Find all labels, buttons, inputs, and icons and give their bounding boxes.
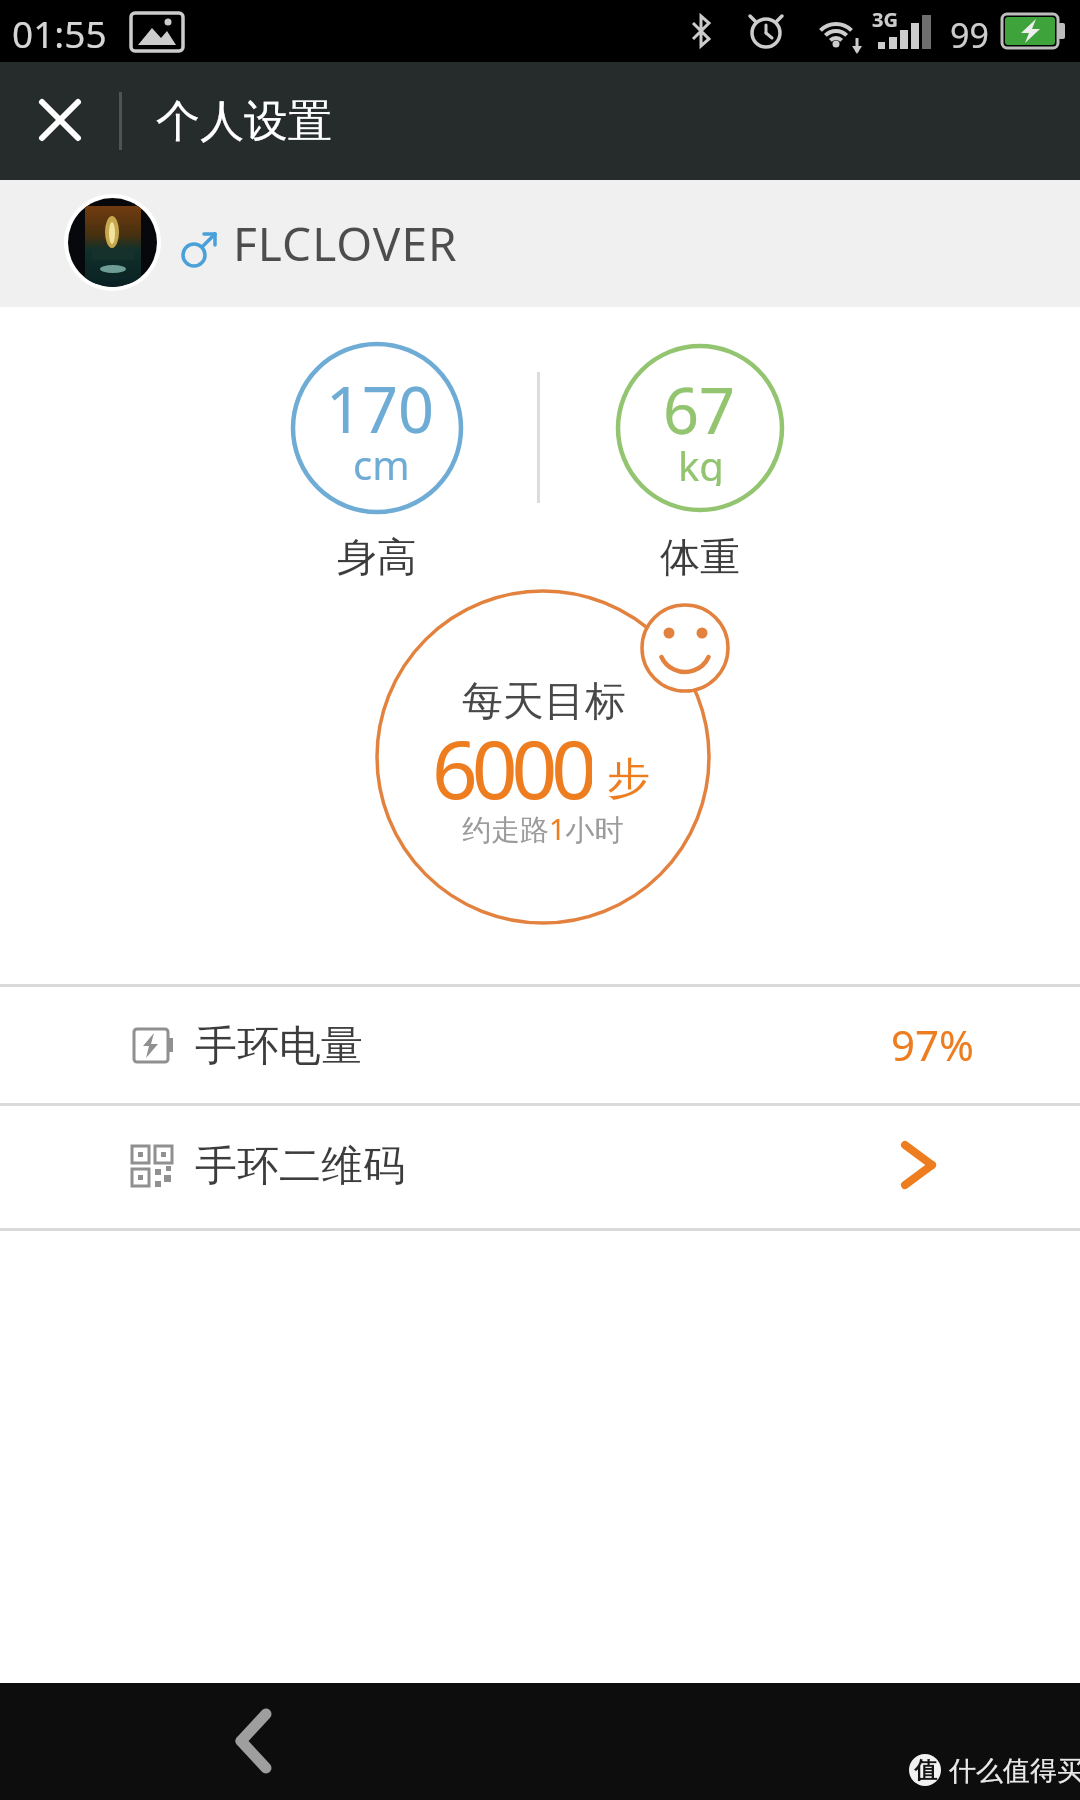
button[interactable] <box>377 591 709 923</box>
staticText: 身高 <box>337 532 417 580</box>
staticText: 约走路1小时 <box>462 809 624 849</box>
staticText: 01:55 <box>12 8 107 54</box>
staticText: 170 <box>326 366 435 452</box>
staticText: 每天目标 <box>462 676 626 728</box>
button[interactable] <box>608 336 792 520</box>
button[interactable] <box>0 180 1080 307</box>
staticText: 97% <box>891 1016 974 1066</box>
staticText: kg <box>678 438 724 486</box>
staticText: 体重 <box>660 532 740 580</box>
staticText: 手环电量 <box>195 1020 363 1070</box>
staticText: 值 <box>914 1756 937 1785</box>
staticText: 3G <box>872 6 898 30</box>
staticText: 手环二维码 <box>195 1140 405 1190</box>
staticText: FLCLOVER <box>233 212 458 264</box>
staticText: 个人设置 <box>156 94 332 146</box>
button[interactable] <box>0 1106 1080 1228</box>
button[interactable] <box>283 334 471 522</box>
staticText: 99 <box>950 12 989 50</box>
staticText: cm <box>353 437 410 485</box>
staticText: 67 <box>663 367 736 453</box>
button[interactable] <box>24 86 96 154</box>
staticText: 步 <box>607 752 650 800</box>
staticText: 6000 <box>432 713 592 803</box>
button[interactable] <box>190 1683 316 1800</box>
staticText: 什么值得买 <box>949 1754 1080 1788</box>
button[interactable] <box>0 987 1080 1103</box>
